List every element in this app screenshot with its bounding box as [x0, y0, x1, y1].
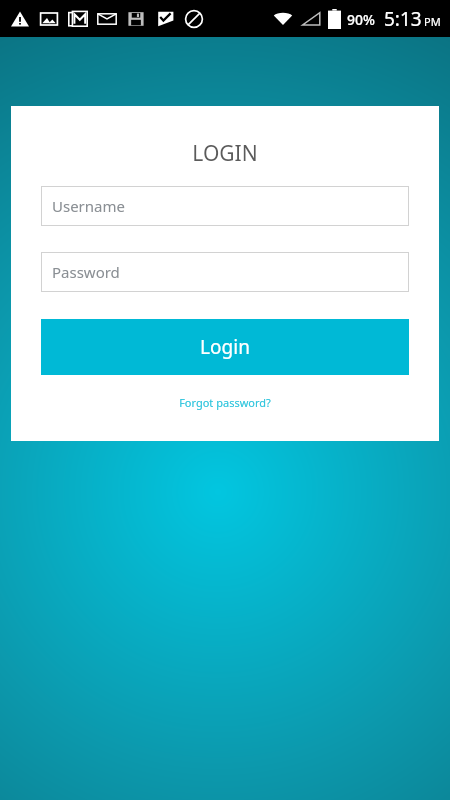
button[interactable]: Forgot password? [155, 391, 295, 413]
button[interactable]: Password [41, 252, 409, 292]
staticText: PM [424, 14, 441, 29]
staticText: LOGIN [192, 139, 258, 168]
staticText: Forgot password? [179, 395, 271, 410]
staticText: 90% [347, 10, 375, 29]
staticText: Username [52, 196, 125, 216]
button[interactable]: Login [41, 319, 409, 375]
staticText: 5:13 [384, 6, 422, 32]
staticText: Password [52, 262, 120, 282]
button[interactable]: Username [41, 186, 409, 226]
staticText: Login [200, 334, 250, 360]
